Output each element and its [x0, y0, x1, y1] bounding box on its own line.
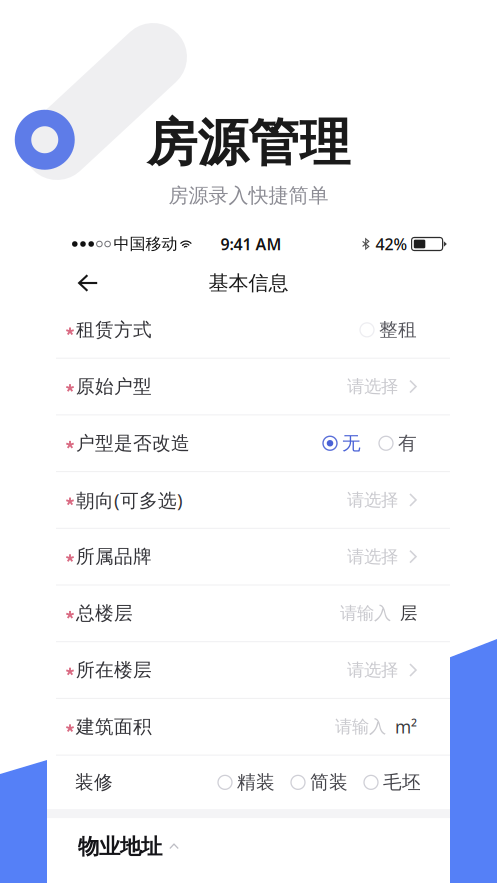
staticText: 物业地址 — [78, 833, 162, 860]
staticText: 42% — [376, 233, 408, 255]
button[interactable]: 装修 — [47, 756, 450, 809]
staticText: 房源录入快捷简单 — [168, 183, 328, 208]
button[interactable]: 物业地址 — [47, 818, 450, 875]
staticText: 房源管理 — [146, 112, 350, 174]
staticText: 请选择 — [347, 546, 398, 567]
staticText: 整租 — [379, 318, 417, 341]
button[interactable]: 原始户型 — [47, 359, 450, 414]
staticText: 请选择 — [347, 376, 398, 397]
staticText: 层 — [400, 603, 417, 624]
staticText: m² — [395, 715, 417, 738]
staticText: 请输入 — [335, 716, 386, 737]
button[interactable]: Back — [47, 264, 118, 302]
staticText: 请选择 — [347, 659, 398, 681]
staticText: 朝向(可多选) — [76, 488, 183, 512]
staticText: 无 — [342, 432, 361, 455]
staticText: 请输入 — [340, 603, 391, 624]
staticText: 租赁方式 — [76, 318, 152, 341]
staticText: 中国移动 — [113, 234, 177, 254]
button[interactable]: 所属品牌 — [47, 529, 450, 584]
button[interactable]: 户型是否改造 — [47, 415, 450, 471]
staticText: 请选择 — [347, 489, 398, 511]
staticText: 总楼层 — [76, 602, 133, 625]
staticText: 简装 — [310, 771, 348, 794]
staticText: 有 — [398, 432, 417, 455]
button[interactable]: 建筑面积 — [47, 699, 450, 755]
button[interactable]: 所在楼层 — [47, 642, 450, 698]
staticText: 毛坯 — [383, 771, 421, 794]
button[interactable]: 朝向(可多选) — [47, 472, 450, 528]
staticText: 原始户型 — [76, 375, 152, 398]
staticText: 基本信息 — [208, 271, 288, 295]
staticText: 户型是否改造 — [76, 432, 190, 455]
staticText: 建筑面积 — [76, 715, 152, 738]
staticText: 装修 — [75, 771, 113, 794]
staticText: 9:41 AM — [220, 233, 281, 255]
staticText: 所属品牌 — [76, 545, 152, 568]
staticText: 所在楼层 — [76, 659, 152, 681]
button[interactable]: 总楼层 — [47, 585, 450, 641]
staticText: 精装 — [237, 771, 275, 794]
button[interactable]: 租赁方式 — [47, 302, 450, 358]
